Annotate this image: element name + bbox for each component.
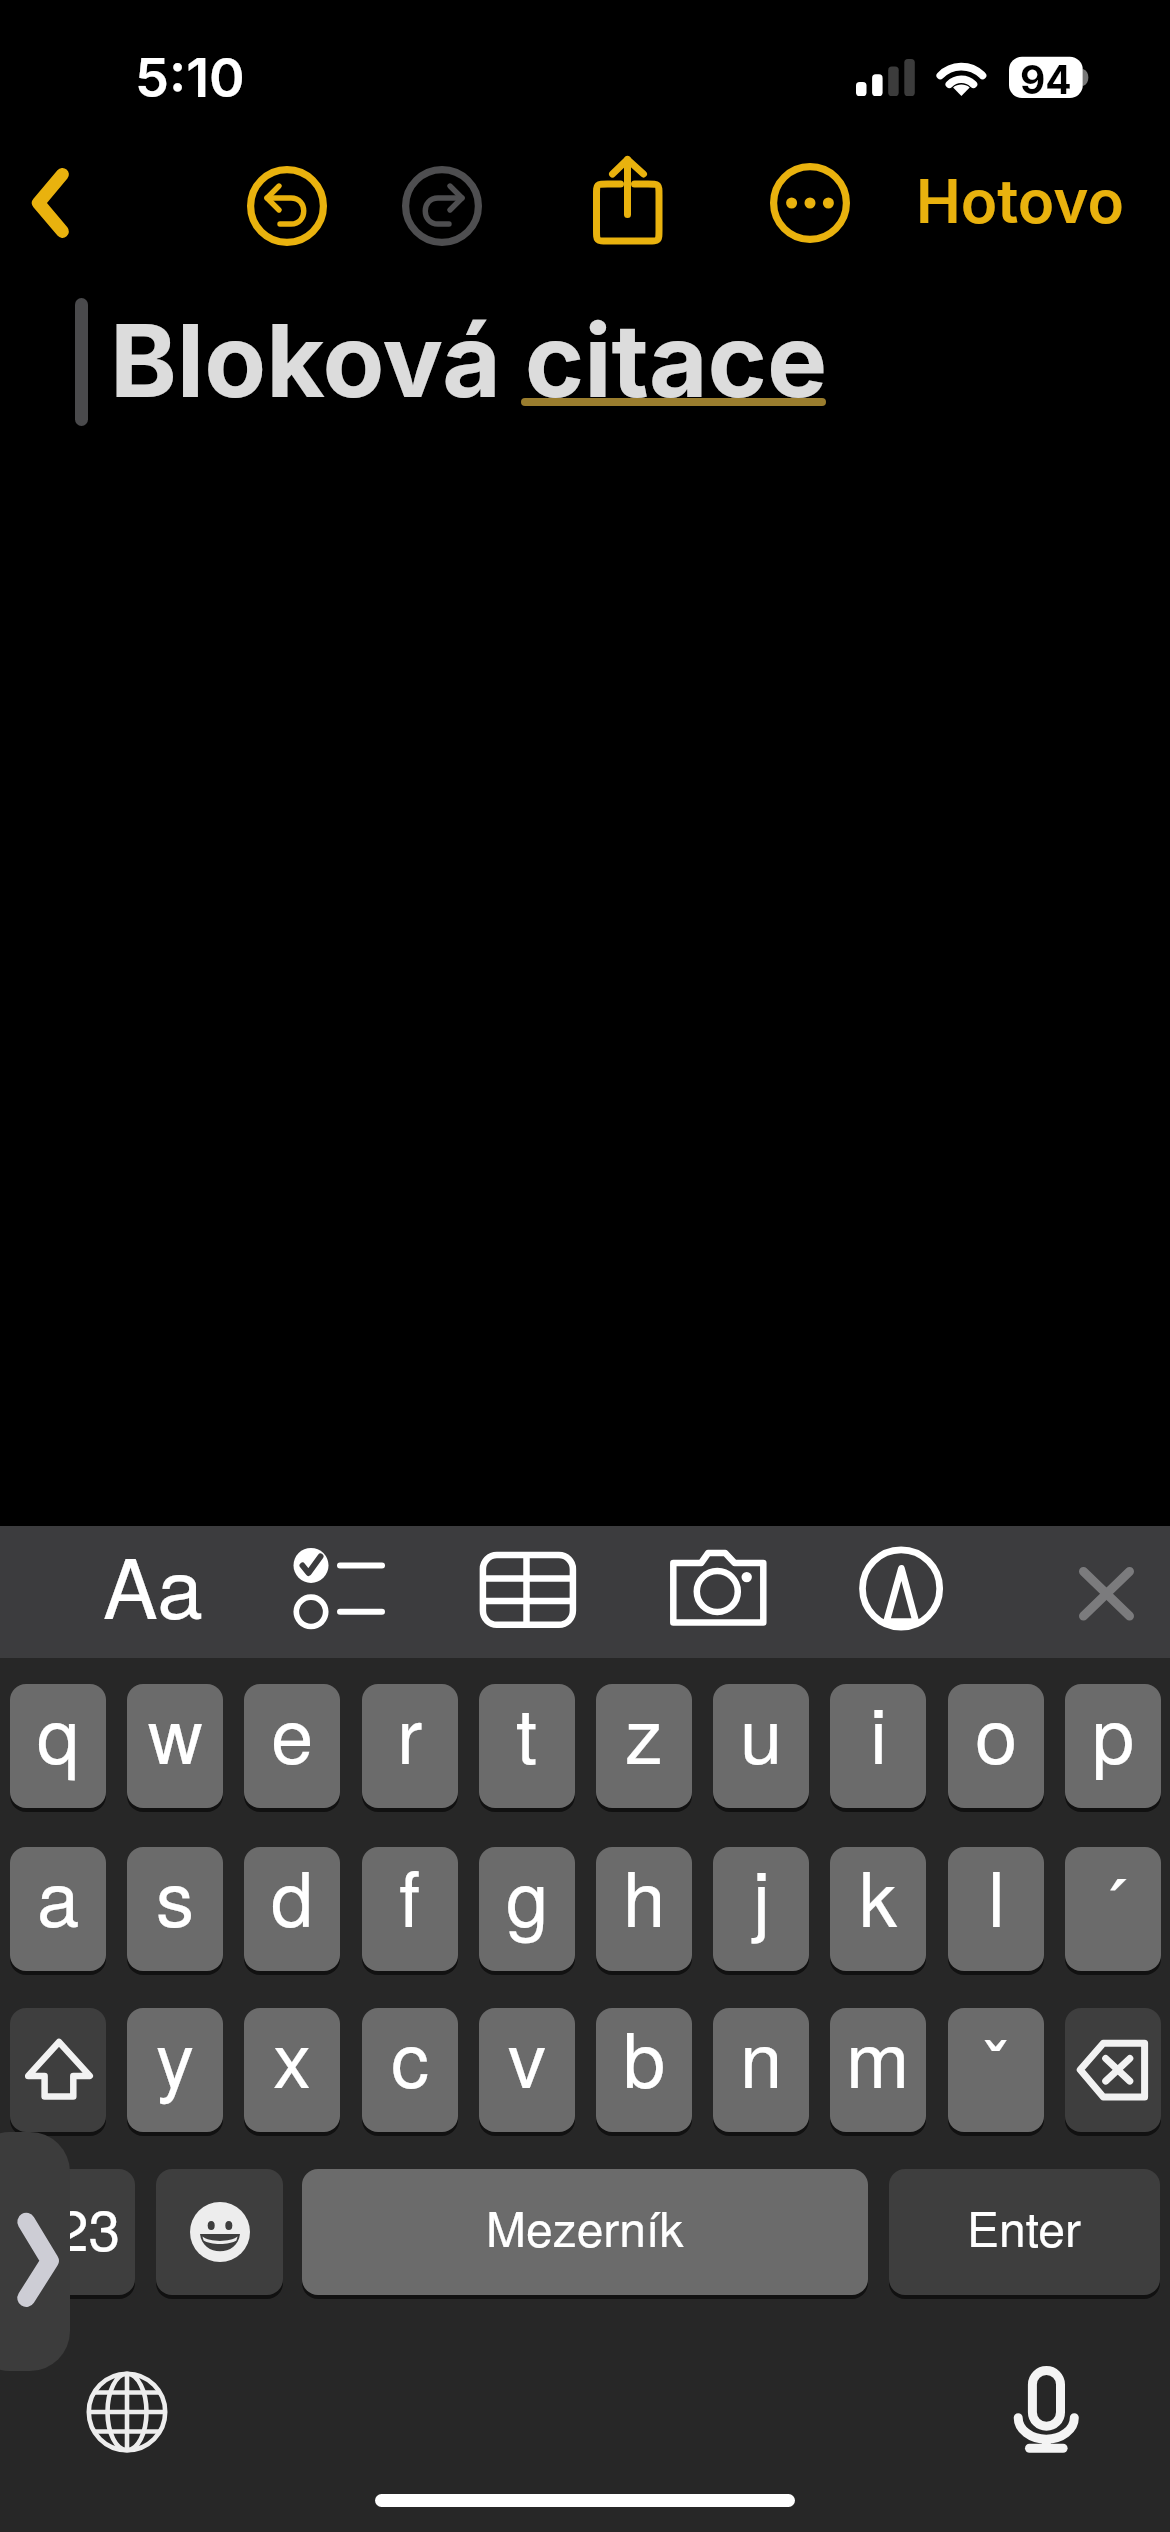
- button[interactable]: Undo: [247, 166, 327, 246]
- button[interactable]: i: [830, 1684, 926, 1808]
- staticText: 5:10: [135, 45, 245, 105]
- staticText: f: [399, 1847, 421, 1949]
- staticText: d: [271, 1847, 314, 1949]
- staticText: o: [975, 1684, 1018, 1786]
- staticText: i: [870, 1684, 887, 1786]
- staticText: 123: [25, 2186, 121, 2268]
- staticText: 94: [1020, 56, 1072, 97]
- staticText: y: [156, 2008, 194, 2110]
- button[interactable]: f: [362, 1847, 458, 1971]
- button[interactable]: ´: [1065, 1847, 1161, 1971]
- button[interactable]: Aa: [88, 1534, 214, 1650]
- staticText: n: [740, 2008, 783, 2110]
- button[interactable]: k: [830, 1847, 926, 1971]
- button[interactable]: Share: [590, 150, 670, 250]
- staticText: Mezerník: [486, 2192, 684, 2261]
- button[interactable]: m: [830, 2008, 926, 2132]
- staticText: j: [753, 1847, 770, 1949]
- staticText: b: [623, 2008, 666, 2110]
- button[interactable]: d: [244, 1847, 340, 1971]
- staticText: Bloková citace: [110, 299, 828, 421]
- staticText: v: [508, 2008, 546, 2110]
- button[interactable]: o: [948, 1684, 1044, 1808]
- button[interactable]: t: [479, 1684, 575, 1808]
- button[interactable]: Markup: [857, 1544, 945, 1632]
- button[interactable]: j: [713, 1847, 809, 1971]
- button[interactable]: l: [948, 1847, 1044, 1971]
- staticText: c: [391, 2008, 429, 2110]
- staticText: t: [516, 1684, 538, 1786]
- button[interactable]: Dictate: [1006, 2360, 1082, 2456]
- button[interactable]: Back: [0, 150, 96, 260]
- button[interactable]: Enter: [889, 2169, 1160, 2295]
- button[interactable]: s: [127, 1847, 223, 1971]
- staticText: Hotovo: [916, 165, 1124, 238]
- staticText: x: [273, 2008, 311, 2110]
- button[interactable]: ˇ: [948, 2008, 1044, 2132]
- button[interactable]: Back gesture: [0, 2132, 70, 2371]
- button[interactable]: u: [713, 1684, 809, 1808]
- button[interactable]: a: [10, 1847, 106, 1971]
- staticText: a: [37, 1847, 80, 1949]
- staticText: p: [1092, 1684, 1135, 1786]
- staticText: ˇ: [983, 2008, 1009, 2117]
- button[interactable]: Note body: [0, 285, 1170, 1526]
- button[interactable]: g: [479, 1847, 575, 1971]
- button[interactable]: Checklist: [288, 1546, 392, 1638]
- button[interactable]: More options: [770, 163, 850, 243]
- button[interactable]: z: [596, 1684, 692, 1808]
- button[interactable]: Change language: [85, 2370, 169, 2454]
- button[interactable]: x: [244, 2008, 340, 2132]
- button[interactable]: Hotovo: [916, 165, 1146, 251]
- staticText: k: [859, 1847, 897, 1949]
- staticText: e: [271, 1684, 314, 1786]
- button[interactable]: p: [1065, 1684, 1161, 1808]
- staticText: m: [846, 2008, 910, 2110]
- button[interactable]: r: [362, 1684, 458, 1808]
- staticText: w: [148, 1684, 203, 1786]
- button[interactable]: y: [127, 2008, 223, 2132]
- staticText: h: [623, 1847, 666, 1949]
- button[interactable]: Redo: [402, 166, 482, 246]
- staticText: Enter: [967, 2192, 1082, 2261]
- button[interactable]: Close keyboard: [1059, 1548, 1149, 1638]
- staticText: s: [156, 1847, 194, 1949]
- button[interactable]: Mezerník: [302, 2169, 868, 2295]
- staticText: r: [397, 1684, 423, 1786]
- staticText: q: [37, 1684, 80, 1786]
- button[interactable]: Shift: [10, 2008, 106, 2132]
- staticText: ´: [1100, 1847, 1126, 1956]
- button[interactable]: Backspace: [1065, 2008, 1161, 2132]
- button[interactable]: h: [596, 1847, 692, 1971]
- staticText: z: [625, 1684, 663, 1786]
- button[interactable]: e: [244, 1684, 340, 1808]
- staticText: l: [988, 1847, 1005, 1949]
- button[interactable]: n: [713, 2008, 809, 2132]
- button[interactable]: w: [127, 1684, 223, 1808]
- button[interactable]: Table: [476, 1548, 578, 1630]
- button[interactable]: 123: [11, 2169, 135, 2295]
- button[interactable]: q: [10, 1684, 106, 1808]
- button[interactable]: Emoji: [156, 2169, 283, 2295]
- button[interactable]: Camera: [664, 1544, 774, 1636]
- staticText: Aa: [103, 1525, 203, 1641]
- staticText: g: [506, 1847, 549, 1949]
- button[interactable]: c: [362, 2008, 458, 2132]
- button[interactable]: v: [479, 2008, 575, 2132]
- button[interactable]: b: [596, 2008, 692, 2132]
- staticText: u: [740, 1684, 783, 1786]
